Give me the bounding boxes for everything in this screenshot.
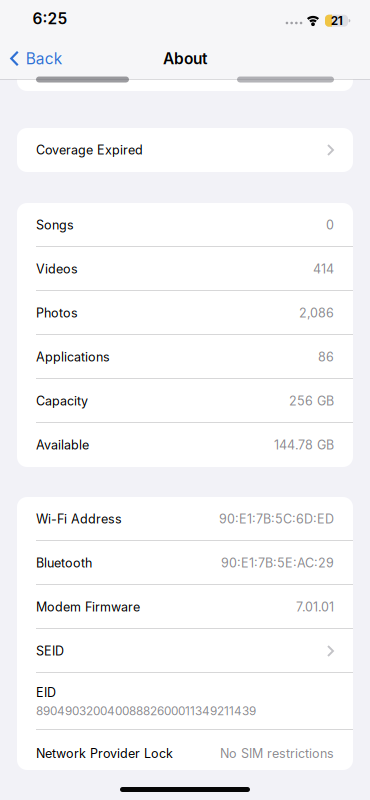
staticText: 2,086: [299, 305, 334, 321]
staticText: EID: [36, 685, 56, 700]
staticText: 6:25: [32, 9, 67, 28]
staticText: Modem Firmware: [36, 599, 140, 615]
staticText: Back: [26, 49, 62, 68]
staticText: Applications: [36, 349, 110, 365]
staticText: 89049032004008882600011349211439: [36, 704, 256, 718]
button[interactable]: SEID: [17, 629, 353, 673]
staticText: 21: [331, 14, 343, 28]
staticText: Coverage Expired: [36, 142, 143, 158]
staticText: 90:E1:7B:5E:AC:29: [221, 555, 334, 571]
staticText: 144.78 GB: [274, 437, 334, 453]
staticText: 90:E1:7B:5C:6D:ED: [219, 511, 334, 527]
staticText: Bluetooth: [36, 555, 92, 571]
button[interactable]: Back: [10, 49, 62, 68]
staticText: Videos: [36, 261, 78, 277]
staticText: SEID: [36, 643, 64, 659]
staticText: Network Provider Lock: [36, 746, 173, 761]
staticText: Songs: [36, 217, 74, 233]
staticText: 0: [326, 217, 334, 233]
staticText: 86: [318, 349, 334, 365]
staticText: No SIM restrictions: [220, 746, 334, 761]
staticText: 7.01.01: [296, 599, 334, 615]
staticText: Capacity: [36, 393, 88, 409]
staticText: 256 GB: [289, 393, 334, 409]
staticText: About: [163, 49, 207, 68]
staticText: Photos: [36, 305, 78, 321]
button[interactable]: Coverage Expired: [17, 128, 353, 172]
staticText: 414: [313, 261, 334, 277]
staticText: Wi-Fi Address: [36, 511, 122, 527]
staticText: Available: [36, 437, 89, 453]
